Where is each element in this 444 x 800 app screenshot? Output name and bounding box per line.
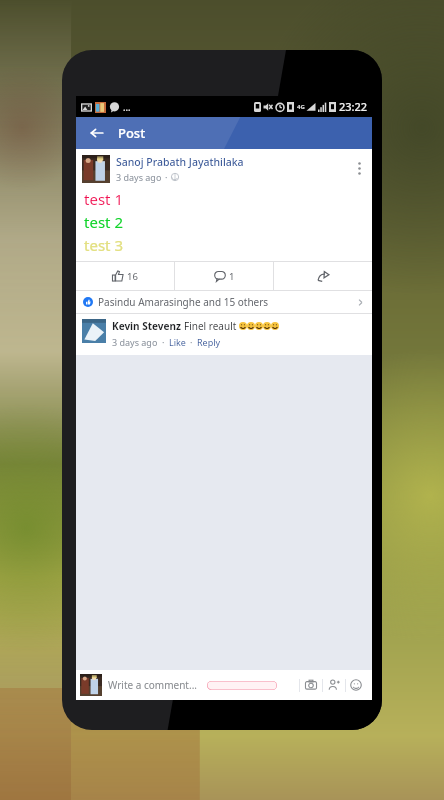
staticText: Write a comment...	[108, 678, 197, 692]
staticText: ·	[162, 336, 165, 348]
staticText: test 3	[84, 235, 123, 255]
staticText: Pasindu Amarasinghe and 15 others	[98, 295, 356, 309]
staticText: test 2	[84, 212, 123, 232]
staticText: 4G	[297, 103, 305, 111]
staticText: Sanoj Prabath Jayathilaka	[116, 155, 244, 169]
button[interactable]: Pasindu Amarasinghe and 15 others	[76, 291, 372, 313]
staticText: ·	[165, 171, 168, 183]
staticText: ...	[123, 101, 131, 113]
staticText: 23:22	[339, 99, 368, 114]
button[interactable]: Back	[84, 120, 110, 146]
staticText: 16	[127, 270, 138, 283]
staticText: Post	[118, 124, 146, 142]
button[interactable]: Kevin Stevenz	[76, 314, 372, 355]
staticText: Finel reault	[184, 319, 239, 333]
button[interactable]: Tag people	[323, 673, 345, 697]
staticText: ·	[190, 336, 193, 348]
staticText: 1	[229, 270, 235, 283]
button[interactable]: Camera	[300, 673, 322, 697]
button[interactable]: Share	[274, 262, 372, 290]
button[interactable]: Like	[76, 262, 174, 290]
button[interactable]: More options	[350, 155, 368, 181]
button[interactable]: Sticker	[346, 673, 366, 697]
staticText: test 1	[84, 189, 123, 209]
staticText: Kevin Stevenz	[112, 319, 184, 333]
button[interactable]: Comment	[175, 262, 273, 290]
staticText: 3 days ago	[116, 171, 162, 183]
staticText: 3 days ago	[112, 336, 158, 348]
button[interactable]: Like	[169, 336, 186, 348]
button[interactable]: Reply	[197, 336, 221, 348]
